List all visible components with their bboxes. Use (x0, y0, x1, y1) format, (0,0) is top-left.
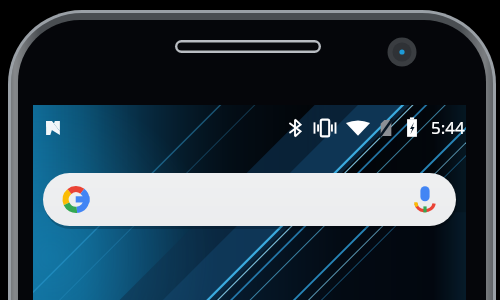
button[interactable]: Voice search (405, 182, 441, 218)
button[interactable]: Search (43, 173, 423, 226)
